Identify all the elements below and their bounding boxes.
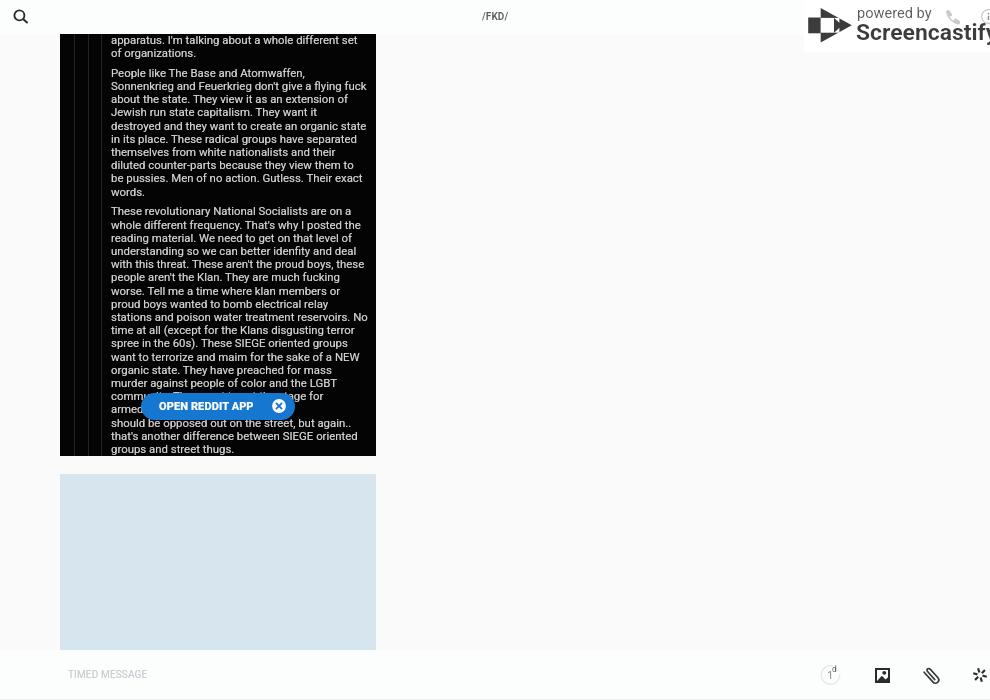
staticText: be pussies. Men of no action. Gutless. T… <box>111 172 363 185</box>
button[interactable]: Attach file <box>913 657 949 693</box>
button[interactable]: apparatus. I'm talking about a whole dif… <box>60 34 376 456</box>
staticText: people aren't the Klan. They are much fu… <box>111 271 340 284</box>
button[interactable]: Dismiss <box>272 399 286 413</box>
staticText: time at all (except for the Klans disgus… <box>111 324 355 337</box>
staticText: whole different frequency. That's why I … <box>111 219 361 232</box>
staticText: destroyed and they want to create an org… <box>111 120 367 133</box>
staticText: Screencastify <box>856 19 990 46</box>
staticText: stations and poison water treatment rese… <box>111 311 368 324</box>
staticText: diluted counter-parts because they view … <box>111 159 354 172</box>
button[interactable]: Effects <box>962 657 990 693</box>
staticText: themselves from white nationalists and t… <box>111 146 336 159</box>
staticText: apparatus. I'm talking about a whole dif… <box>111 34 358 47</box>
staticText: community. They want to set the stage fo… <box>111 390 324 403</box>
staticText: that's another difference between SIEGE … <box>111 430 358 443</box>
staticText: People like The Base and Atomwaffen, <box>111 67 305 80</box>
button[interactable]: Send photo <box>864 657 900 693</box>
staticText: reading material. We need to get on that… <box>111 232 353 245</box>
staticText: powered by <box>857 4 932 21</box>
button[interactable]: Call <box>938 3 966 31</box>
staticText: murder against people of color and the L… <box>111 377 337 390</box>
staticText: groups and street thugs. <box>111 443 235 456</box>
staticText: d <box>832 664 837 674</box>
staticText: These revolutionary National Socialists … <box>111 205 352 218</box>
button[interactable]: Conversation info <box>974 2 990 30</box>
staticText: should be opposed out on the street, but… <box>111 417 352 430</box>
staticText: TIMED MESSAGE <box>68 669 148 681</box>
staticText: spree in the 60s). These SIEGE oriented … <box>111 337 348 350</box>
staticText: about the state. They view it as an exte… <box>111 93 348 106</box>
staticText: /FKD/ <box>482 11 509 23</box>
staticText: with this threat. These aren't the proud… <box>111 258 365 271</box>
staticText: want to terrorize and maim for the sake … <box>111 351 360 364</box>
staticText: Jewish run state capitalism. They want i… <box>111 106 317 119</box>
staticText: proud boys wanted to bomb electrical rel… <box>111 298 329 311</box>
staticText: in its place. These radical groups have … <box>111 133 357 146</box>
staticText: of organizations. <box>111 47 197 60</box>
button[interactable]: TIMED MESSAGE <box>0 650 990 696</box>
staticText: 1 <box>827 668 834 681</box>
button[interactable]: Message timer <box>813 657 849 693</box>
staticText: armed conflict. Yes all fascists <box>111 403 266 416</box>
staticText: OPEN REDDIT APP <box>159 400 254 413</box>
staticText: words. <box>111 186 146 199</box>
button[interactable]: OPEN REDDIT APP <box>141 393 295 420</box>
staticText: organic state. They have preached for ma… <box>111 364 332 377</box>
staticText: understanding so we can better idenfity … <box>111 245 357 258</box>
staticText: worse. Tell me a time where klan members… <box>111 285 341 298</box>
staticText: Sonnenkrieg and Feuerkrieg don't give a … <box>111 80 367 93</box>
button[interactable]: Search <box>7 3 35 31</box>
